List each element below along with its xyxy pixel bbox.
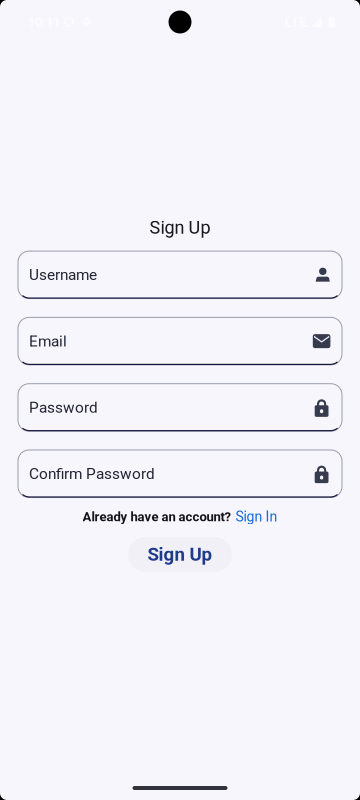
- button[interactable]: Confirm Password: [18, 450, 342, 497]
- staticText: Sign Up: [147, 543, 212, 565]
- button[interactable]: Password: [18, 384, 342, 431]
- staticText: Email: [29, 332, 67, 350]
- button[interactable]: Username: [18, 251, 342, 299]
- staticText: Confirm Password: [29, 465, 155, 483]
- staticText: Password: [29, 398, 98, 416]
- staticText: Username: [29, 266, 97, 284]
- button[interactable]: Sign In: [235, 508, 277, 525]
- staticText: Already have an account?: [82, 509, 231, 524]
- staticText: Sign Up: [149, 217, 210, 238]
- staticText: Sign In: [235, 508, 277, 525]
- button[interactable]: Email: [18, 317, 342, 365]
- button[interactable]: Sign Up: [128, 537, 232, 572]
